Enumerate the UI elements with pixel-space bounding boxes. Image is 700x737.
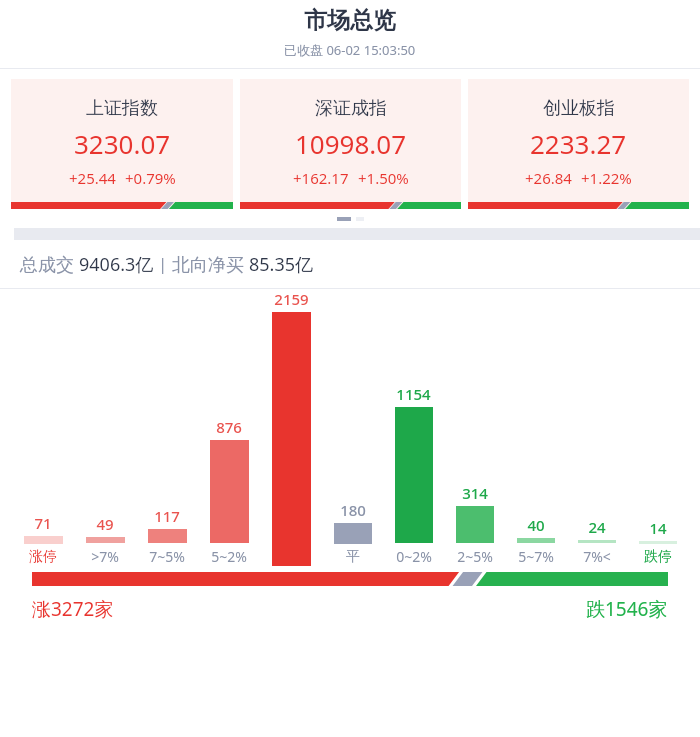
staticText: 1154 [396, 384, 431, 404]
staticText: 深证成指 [315, 97, 387, 120]
button[interactable]: 上证指数 [11, 79, 233, 209]
staticText: 跌1546家 [586, 596, 668, 622]
staticText: 涨停 [29, 548, 57, 566]
staticText: 上证指数 [86, 97, 158, 120]
button[interactable]: 180 [322, 500, 383, 566]
button[interactable]: 314 [444, 483, 505, 566]
staticText: 876 [216, 417, 242, 437]
staticText: 平 [346, 548, 360, 566]
staticText: +1.50% [358, 168, 409, 188]
staticText: 7~5% [149, 547, 185, 566]
staticText: 9406.3亿 [79, 252, 154, 277]
staticText: 14 [649, 518, 667, 538]
staticText: 已收盘 06-02 15:03:50 [284, 41, 416, 59]
staticText: 40 [527, 515, 545, 535]
staticText: +0.79% [125, 168, 176, 188]
staticText: 2~5% [457, 547, 493, 566]
staticText: 71 [34, 513, 52, 533]
button[interactable]: 24 [566, 517, 627, 566]
staticText: 3230.07 [74, 126, 171, 161]
staticText: 24 [588, 517, 606, 537]
staticText: +26.84 [525, 168, 572, 188]
button[interactable]: 总成交 [20, 240, 700, 288]
staticText: 北向净买 [172, 252, 249, 277]
staticText: 市场总览 [304, 6, 396, 35]
staticText: +162.17 [293, 168, 349, 188]
button[interactable]: 2159 [260, 289, 322, 566]
button[interactable]: 创业板指 [468, 79, 689, 209]
staticText: 总成交 [20, 252, 79, 277]
staticText: +1.22% [581, 168, 632, 188]
staticText: | [154, 253, 172, 275]
button[interactable]: 1154 [383, 384, 444, 566]
other: Advancers versus decliners [32, 572, 668, 586]
staticText: 2233.27 [530, 126, 627, 161]
staticText: +25.44 [69, 168, 116, 188]
staticText: 180 [340, 500, 366, 520]
staticText: 314 [462, 483, 488, 503]
button[interactable]: 49 [74, 514, 136, 566]
staticText: 49 [96, 514, 114, 534]
button[interactable]: 71 [12, 513, 74, 566]
staticText: 7%< [583, 547, 611, 566]
staticText: 85.35亿 [249, 252, 314, 277]
staticText: 5~7% [518, 547, 554, 566]
button[interactable]: 876 [198, 417, 260, 566]
staticText: 0~2% [396, 547, 432, 566]
button[interactable]: 14 [627, 518, 688, 566]
staticText: 5~2% [211, 547, 247, 566]
staticText: >7% [91, 547, 119, 566]
staticText: 跌停 [644, 548, 672, 566]
button[interactable]: 深证成指 [240, 79, 461, 209]
staticText: 涨3272家 [32, 596, 114, 622]
staticText: 10998.07 [295, 126, 407, 161]
staticText: 117 [154, 506, 180, 526]
staticText: 创业板指 [543, 97, 615, 120]
button[interactable]: 117 [136, 506, 198, 566]
staticText: 2159 [274, 289, 309, 309]
button[interactable]: 40 [505, 515, 566, 566]
